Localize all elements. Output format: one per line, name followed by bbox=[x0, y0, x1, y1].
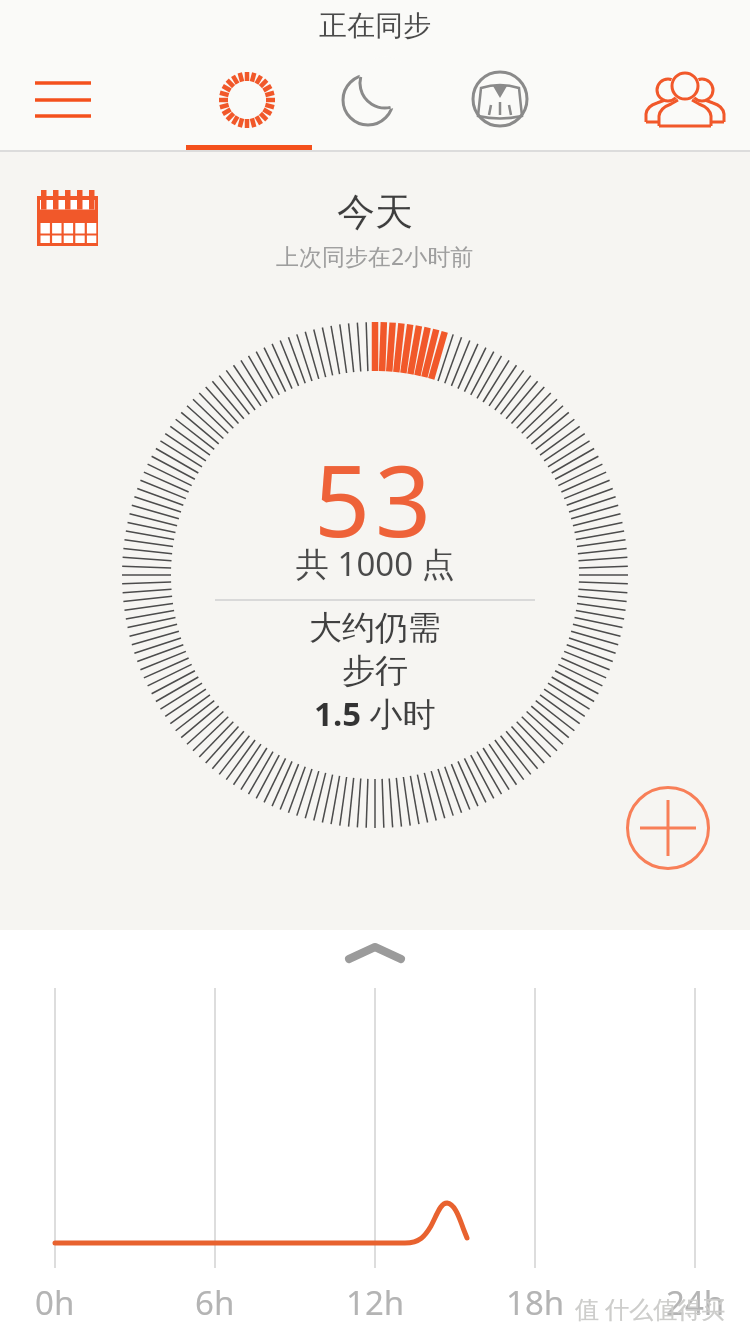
staticText: 0h bbox=[35, 1280, 75, 1325]
button[interactable] bbox=[15, 63, 111, 135]
staticText: 12h bbox=[346, 1280, 405, 1325]
staticText: 上次同步在2小时前 bbox=[276, 240, 474, 271]
button[interactable] bbox=[627, 787, 709, 869]
button[interactable] bbox=[199, 52, 295, 148]
staticText: 共 1000 点 bbox=[296, 541, 455, 586]
button[interactable] bbox=[452, 52, 548, 148]
staticText: 正在同步 bbox=[319, 8, 431, 43]
staticText: 大约仍需 bbox=[309, 607, 441, 649]
staticText: 值 什么值得买 bbox=[575, 1292, 726, 1325]
button[interactable] bbox=[637, 52, 733, 148]
button[interactable] bbox=[322, 52, 418, 148]
staticText: 24h bbox=[666, 1280, 725, 1325]
staticText: 53 bbox=[314, 432, 437, 565]
button[interactable] bbox=[30, 182, 106, 252]
staticText: 6h bbox=[195, 1280, 235, 1325]
button[interactable] bbox=[325, 935, 425, 971]
staticText: 步行 bbox=[342, 650, 408, 692]
staticText: 今天 bbox=[337, 188, 413, 236]
staticText: 1.5 小时 bbox=[314, 691, 436, 736]
staticText: 18h bbox=[506, 1280, 565, 1325]
